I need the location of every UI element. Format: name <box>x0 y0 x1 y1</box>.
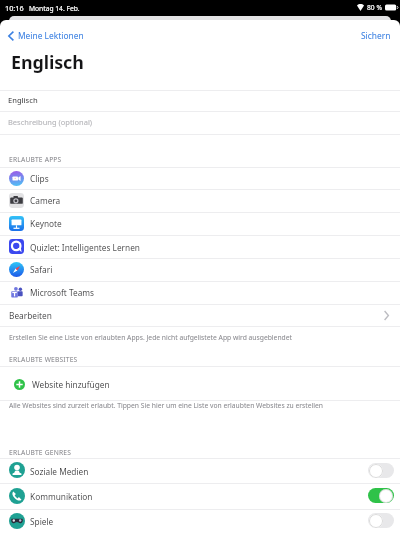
button[interactable] <box>0 112 400 134</box>
button[interactable]: An <box>368 488 394 503</box>
staticText: Montag 14. Feb. <box>29 4 80 13</box>
staticText: Safari <box>30 264 53 275</box>
staticText: 80 % <box>367 3 382 12</box>
button[interactable] <box>0 190 400 212</box>
staticText: Soziale Medien <box>30 466 89 477</box>
staticText: ERLAUBTE WEBSITES <box>9 355 78 364</box>
staticText: ERLAUBTE APPS <box>9 155 62 164</box>
button[interactable] <box>0 236 400 258</box>
button[interactable]: Aus <box>368 513 394 528</box>
staticText: Camera <box>30 195 61 206</box>
staticText: Clips <box>30 173 49 184</box>
staticText: Alle Websites sind zurzeit erlaubt. Tipp… <box>9 401 324 410</box>
staticText: Quizlet: Intelligentes Lernen <box>30 242 140 253</box>
staticText: Sichern <box>361 30 391 41</box>
staticText: Erstellen Sie eine Liste von erlaubten A… <box>9 333 292 342</box>
button[interactable] <box>0 212 400 235</box>
button[interactable] <box>0 90 400 111</box>
button[interactable]: Meine Lektionen <box>6 27 86 44</box>
button[interactable] <box>0 167 400 189</box>
staticText: Kommunikation <box>30 491 93 502</box>
button[interactable] <box>0 509 400 533</box>
button[interactable] <box>0 484 400 509</box>
button[interactable] <box>0 281 400 304</box>
staticText: Spiele <box>30 516 54 527</box>
staticText: Keynote <box>30 218 62 229</box>
button[interactable]: Sichern <box>359 27 393 44</box>
staticText: Beschreibung (optional) <box>8 117 93 127</box>
button[interactable]: Aus <box>368 463 394 478</box>
button[interactable] <box>0 259 400 281</box>
staticText: Meine Lektionen <box>18 30 84 41</box>
staticText: Microsoft Teams <box>30 287 95 298</box>
staticText: Bearbeiten <box>9 310 52 321</box>
staticText: Englisch <box>11 50 84 74</box>
staticText: ERLAUBTE GENRES <box>9 448 71 457</box>
button[interactable] <box>0 367 400 400</box>
button[interactable] <box>0 459 400 483</box>
staticText: Website hinzufügen <box>32 379 110 390</box>
button[interactable] <box>0 305 400 326</box>
staticText: 10:16 <box>5 3 24 13</box>
staticText: Englisch <box>8 95 38 105</box>
